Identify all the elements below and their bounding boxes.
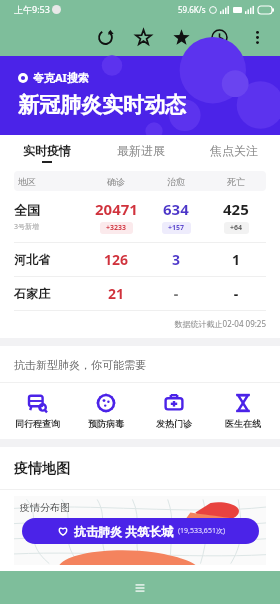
staticText: (19,533,651次) xyxy=(178,526,225,536)
button[interactable]: History xyxy=(200,18,238,56)
staticText: 预防病毒 xyxy=(88,418,124,429)
staticText: 3号新增 xyxy=(14,222,40,232)
staticText: 新冠肺炎实时动态 xyxy=(18,92,186,118)
button[interactable]: Bookmark xyxy=(124,18,162,56)
button[interactable]: 抗击肺炎 共筑长城 xyxy=(22,518,259,544)
staticText: 上午9:53 xyxy=(14,3,50,15)
staticText: 抗击新型肺炎，你可能需要 xyxy=(14,358,146,372)
staticText: 确诊 xyxy=(90,176,142,187)
button[interactable]: 实时疫情 xyxy=(0,135,94,171)
staticText: 医生在线 xyxy=(225,418,261,429)
staticText: +157 xyxy=(168,223,185,233)
staticText: 夸克AI搜索 xyxy=(33,70,89,85)
staticText: 抗击肺炎 共筑长城 xyxy=(74,523,174,539)
staticText: 1 xyxy=(206,250,266,269)
staticText: 疫情地图 xyxy=(14,460,70,478)
staticText: 126 xyxy=(86,250,146,269)
staticText: 425 xyxy=(223,199,249,219)
button[interactable]: Menu xyxy=(0,571,280,604)
button[interactable]: 医生在线 xyxy=(211,393,275,429)
staticText: +3233 xyxy=(106,223,127,233)
staticText: 21 xyxy=(86,284,146,303)
button[interactable]: 石家庄 xyxy=(14,277,266,310)
button[interactable]: 预防病毒 xyxy=(74,393,138,429)
staticText: 地区 xyxy=(18,176,82,187)
button[interactable]: Favorite xyxy=(162,18,200,56)
staticText: - xyxy=(146,284,206,303)
staticText: 数据统计截止02-04 09:25 xyxy=(14,318,266,329)
button[interactable]: 全国 xyxy=(14,199,266,234)
staticText: 死亡 xyxy=(210,176,262,187)
staticText: 同行程查询 xyxy=(15,418,60,429)
staticText: +64 xyxy=(230,223,243,233)
staticText: 最新进展 xyxy=(117,143,165,158)
button[interactable]: 发热门诊 xyxy=(142,393,206,429)
staticText: 治愈 xyxy=(150,176,202,187)
staticText: 河北省 xyxy=(14,252,86,267)
button[interactable]: More options xyxy=(238,18,276,56)
staticText: 634 xyxy=(163,199,189,219)
staticText: 3 xyxy=(146,250,206,269)
staticText: 发热门诊 xyxy=(156,418,192,429)
staticText: 实时疫情 xyxy=(23,143,71,158)
staticText: 疫情分布图 xyxy=(20,501,70,514)
button[interactable]: 河北省 xyxy=(14,243,266,276)
button[interactable]: Refresh xyxy=(86,18,124,56)
staticText: - xyxy=(206,284,266,303)
button[interactable]: 焦点关注 xyxy=(187,135,280,171)
staticText: 石家庄 xyxy=(14,286,86,301)
staticText: 20471 xyxy=(95,199,138,219)
staticText: 59.6K/s xyxy=(178,4,206,15)
staticText: 全国 xyxy=(14,202,40,218)
staticText: 焦点关注 xyxy=(210,143,258,158)
button[interactable]: 最新进展 xyxy=(94,135,187,171)
button[interactable]: 同行程查询 xyxy=(5,393,69,429)
